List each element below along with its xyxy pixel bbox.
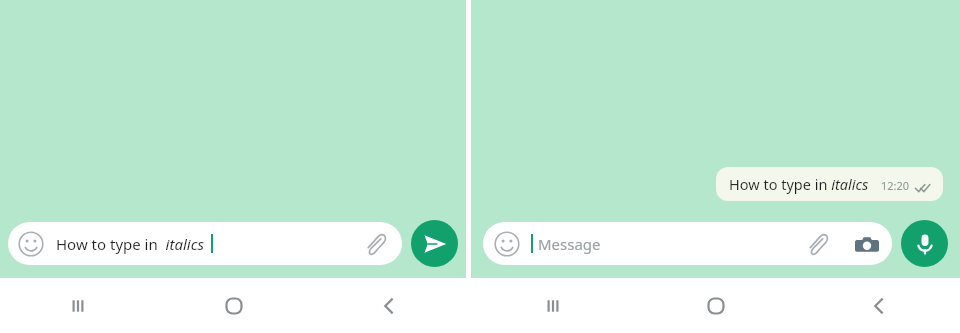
button[interactable]: How to type in italics (716, 167, 943, 201)
button[interactable]: Camera (855, 232, 879, 256)
staticText: Message (538, 234, 601, 254)
button[interactable]: Attach (362, 231, 388, 257)
button[interactable]: Attach (804, 231, 830, 257)
button[interactable]: Recents (471, 278, 634, 333)
staticText: 12:20 (881, 178, 910, 193)
button[interactable]: Back (797, 278, 960, 333)
button[interactable]: Home (156, 278, 311, 333)
button[interactable]: Back (311, 278, 466, 333)
staticText: How to type in italics (729, 174, 869, 194)
button[interactable]: Emoji (494, 231, 520, 257)
button[interactable]: Recents (0, 278, 156, 333)
staticText: How to type in italics (56, 234, 204, 254)
button[interactable]: Emoji (18, 231, 44, 257)
button[interactable]: Send (411, 220, 458, 267)
button[interactable]: Emoji (483, 222, 892, 265)
button[interactable]: Emoji (8, 222, 402, 265)
button[interactable]: Home (634, 278, 797, 333)
button[interactable]: Voice message (901, 220, 948, 267)
